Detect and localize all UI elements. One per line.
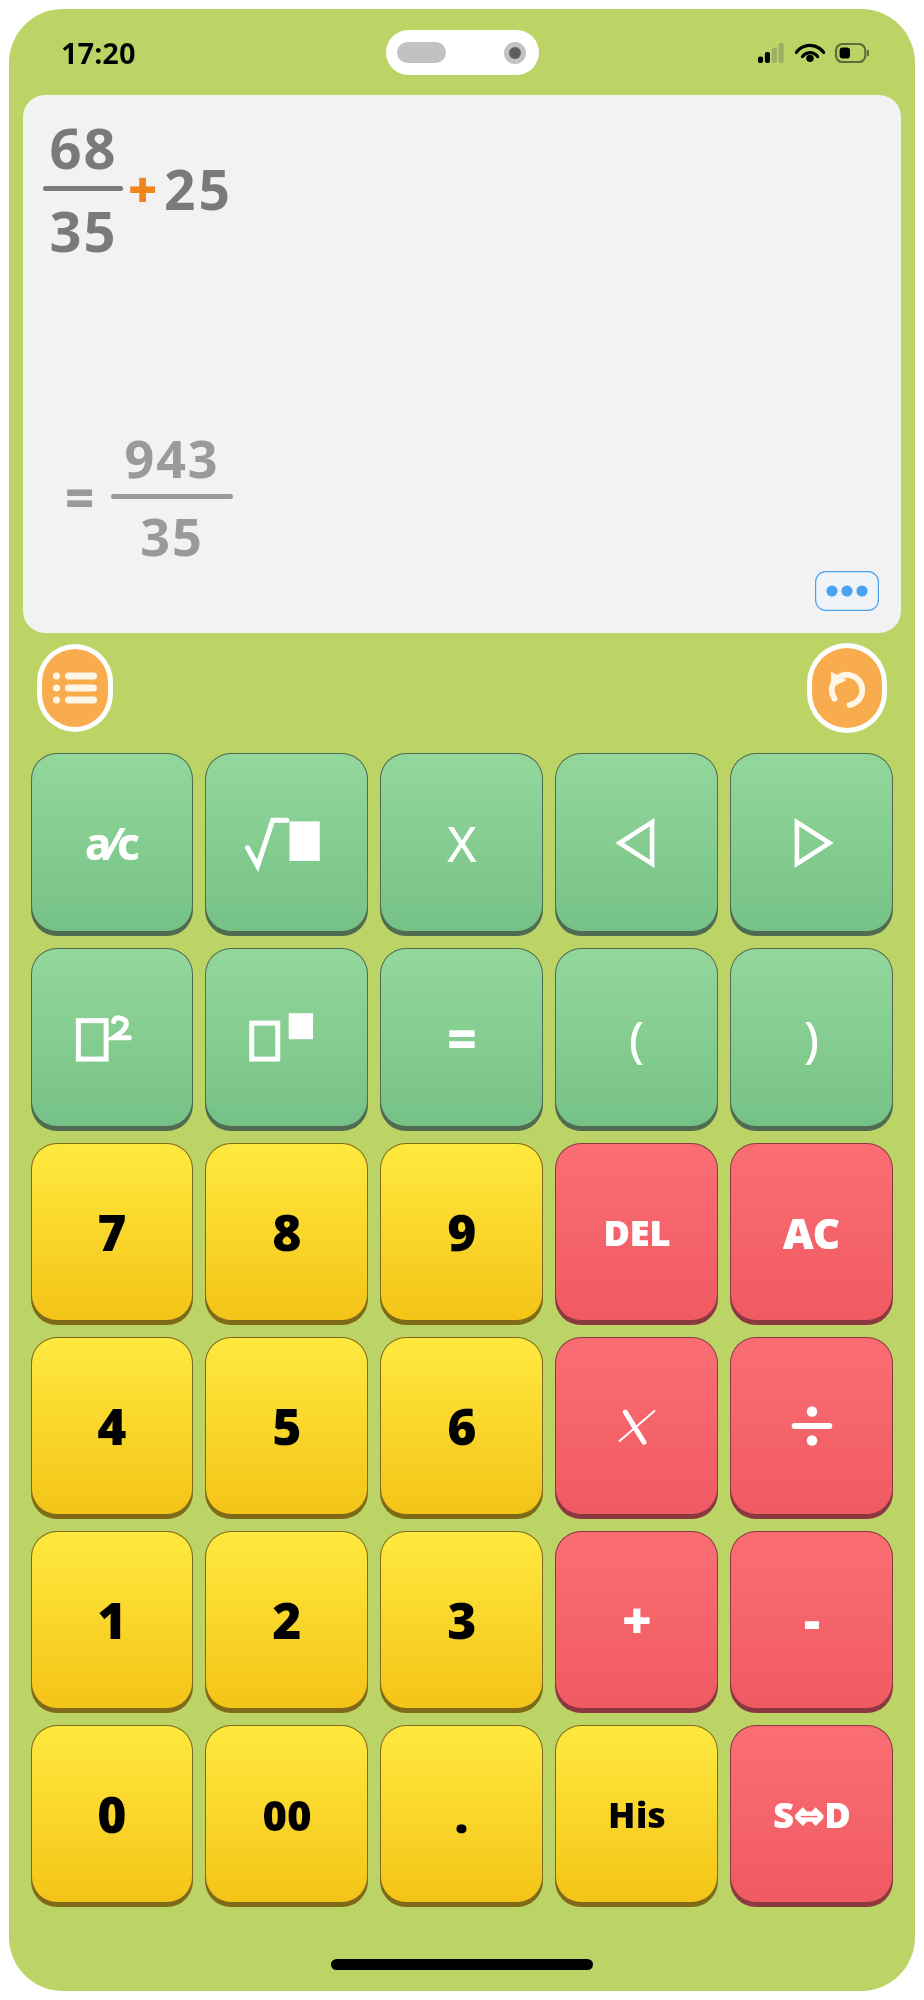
staticText: 25 [164, 151, 233, 226]
button[interactable]: ) [731, 949, 892, 1126]
staticText: AC [783, 1204, 840, 1261]
button[interactable]: AC [731, 1144, 892, 1320]
staticText: 7 [97, 1198, 127, 1266]
button[interactable]: Divide [731, 1338, 892, 1514]
staticText: ) [804, 1004, 819, 1072]
button[interactable]: 5 [206, 1338, 367, 1514]
button[interactable]: 8 [206, 1144, 367, 1320]
button[interactable]: 6 [381, 1338, 542, 1514]
staticText: 68 [49, 109, 118, 185]
button[interactable]: His [556, 1726, 717, 1902]
staticText: 1 [97, 1586, 127, 1654]
button[interactable]: - [731, 1532, 892, 1708]
button[interactable]: Multiply [556, 1338, 717, 1514]
staticText: ( [629, 1004, 644, 1072]
button[interactable]: 2 [206, 1532, 367, 1708]
button[interactable]: Move left [556, 754, 717, 931]
staticText: His [608, 1790, 666, 1839]
button[interactable]: DEL [556, 1144, 717, 1320]
staticText: 5 [272, 1392, 302, 1460]
button[interactable]: 7 [32, 1144, 192, 1320]
button[interactable]: Undo [812, 648, 882, 728]
button[interactable]: Square root [206, 754, 367, 931]
staticText: 35 [49, 192, 118, 268]
button[interactable]: . [381, 1726, 542, 1902]
button[interactable]: Fraction [32, 754, 192, 931]
button[interactable]: 1 [32, 1532, 192, 1708]
button[interactable]: Move right [731, 754, 892, 931]
staticText: + [128, 155, 158, 223]
button[interactable]: Menu [42, 649, 108, 727]
staticText: 4 [97, 1392, 127, 1460]
staticText: 17:20 [61, 33, 136, 72]
staticText: - [804, 1586, 820, 1654]
button[interactable]: More options [815, 571, 879, 611]
staticText: DEL [603, 1208, 671, 1257]
staticText: 3 [447, 1586, 477, 1654]
button[interactable]: = [381, 949, 542, 1126]
button[interactable]: 4 [32, 1338, 192, 1514]
button[interactable]: + [556, 1532, 717, 1708]
button[interactable]: 0 [32, 1726, 192, 1902]
button[interactable]: Power [206, 949, 367, 1126]
staticText: 943 [124, 422, 220, 493]
staticText: = [65, 463, 95, 531]
staticText: . [454, 1780, 469, 1848]
staticText: 6 [447, 1392, 477, 1460]
staticText: 00 [262, 1786, 312, 1843]
button[interactable]: Square [32, 949, 192, 1126]
button[interactable]: X [381, 754, 542, 931]
button[interactable]: ( [556, 949, 717, 1126]
staticText: a⁄c [85, 813, 140, 873]
staticText: = [447, 1004, 477, 1072]
staticText: X [447, 809, 477, 877]
staticText: 8 [272, 1198, 302, 1266]
button[interactable]: 9 [381, 1144, 542, 1320]
staticText: 35 [140, 500, 204, 571]
staticText: 0 [97, 1780, 127, 1848]
staticText: 9 [447, 1198, 477, 1266]
button[interactable]: 00 [206, 1726, 367, 1902]
button[interactable]: 3 [381, 1532, 542, 1708]
staticText: S⇔D [773, 1790, 851, 1839]
staticText: + [622, 1586, 652, 1654]
staticText: 2 [272, 1586, 302, 1654]
button[interactable]: S⇔D [731, 1726, 892, 1902]
